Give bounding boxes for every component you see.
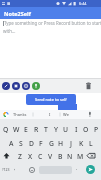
button[interactable]: L [86, 138, 96, 148]
button[interactable]: D [26, 138, 36, 148]
button[interactable] [2, 151, 11, 161]
button[interactable] [28, 166, 36, 174]
button[interactable]: K [76, 138, 86, 148]
button[interactable]: P [91, 124, 101, 134]
staticText: W [13, 125, 20, 134]
staticText: Q [3, 125, 9, 134]
staticText: F [39, 139, 43, 148]
button[interactable] [12, 82, 20, 90]
staticText: Y [54, 125, 58, 134]
button[interactable]: Thanks [13, 112, 27, 117]
button[interactable]: V [45, 151, 55, 161]
button[interactable] [22, 82, 30, 90]
staticText: O [83, 125, 89, 134]
button[interactable]: F [36, 138, 46, 148]
staticText: Z [18, 152, 22, 161]
staticText: Note2Self [4, 10, 31, 17]
button[interactable]: . [76, 165, 78, 172]
button[interactable] [85, 82, 92, 90]
staticText: E [24, 125, 28, 134]
staticText: M [77, 152, 84, 161]
button[interactable]: I [49, 112, 51, 117]
staticText: G [49, 139, 54, 148]
button[interactable]: Send note to self [26, 94, 76, 105]
button[interactable]: X [25, 151, 35, 161]
staticText: 6:44 [79, 1, 87, 6]
button[interactable]: W [11, 124, 21, 134]
button[interactable]: S [16, 138, 26, 148]
button[interactable]: Note2Self [0, 7, 101, 19]
button[interactable]: Y [51, 124, 61, 134]
button[interactable]: H [56, 138, 66, 148]
staticText: D [29, 139, 34, 148]
button[interactable]: I [71, 124, 81, 134]
staticText: I [75, 125, 78, 134]
staticText: K [79, 139, 84, 148]
staticText: Send note to self [35, 97, 67, 102]
button[interactable]: O [81, 124, 91, 134]
staticText: P [94, 125, 99, 134]
button[interactable] [86, 151, 97, 161]
staticText: R [34, 125, 39, 134]
staticText: V [48, 152, 53, 161]
staticText: U [63, 125, 69, 134]
staticText: A [9, 139, 14, 148]
button[interactable]: G [46, 138, 56, 148]
button[interactable]: N [65, 151, 75, 161]
staticText: B [58, 152, 63, 161]
button[interactable] [32, 82, 40, 90]
staticText: N [67, 152, 73, 161]
staticText: C [38, 152, 43, 161]
staticText: H [58, 139, 64, 148]
button[interactable] [2, 82, 10, 90]
button[interactable]: J [66, 138, 76, 148]
staticText: X [28, 152, 33, 161]
staticText: S [19, 139, 23, 148]
button[interactable]: E [21, 124, 31, 134]
button[interactable]: Q [1, 124, 11, 134]
button[interactable]: , [14, 165, 16, 172]
staticText: L [89, 139, 93, 148]
button[interactable]: A [6, 138, 16, 148]
button[interactable]: U [61, 124, 71, 134]
button[interactable]: M [75, 151, 85, 161]
staticText: Type something or Press Record button to… [4, 20, 101, 26]
button[interactable]: C [35, 151, 45, 161]
button[interactable]: We [63, 112, 69, 117]
button[interactable]: ?123 [2, 167, 10, 172]
staticText: with... [3, 28, 16, 34]
button[interactable]: T [41, 124, 51, 134]
staticText: T [44, 125, 48, 134]
button[interactable] [86, 165, 95, 174]
button[interactable]: Z [15, 151, 25, 161]
staticText: J [70, 139, 72, 148]
button[interactable]: R [31, 124, 41, 134]
button[interactable]: B [55, 151, 65, 161]
